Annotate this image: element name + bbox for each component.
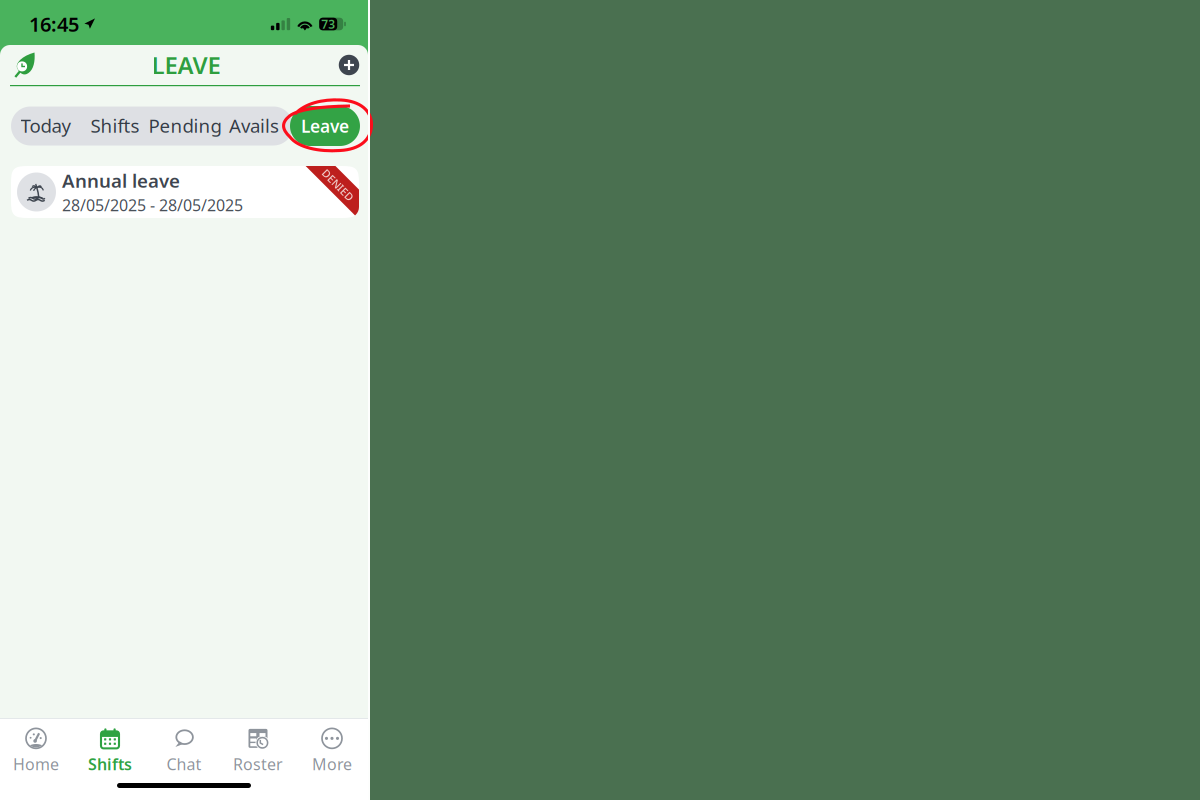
button[interactable]: Leave xyxy=(290,106,360,146)
button[interactable]: Home xyxy=(0,727,73,775)
staticText: Home xyxy=(13,753,59,775)
staticText: Shifts xyxy=(88,753,132,775)
button[interactable]: Annual leave xyxy=(11,166,359,218)
staticText: 28/05/2025 - 28/05/2025 xyxy=(62,194,243,216)
staticText: 16:45 xyxy=(29,11,79,37)
staticText: Pending xyxy=(148,113,221,138)
staticText: More xyxy=(312,753,352,775)
button[interactable]: Shifts xyxy=(73,727,147,775)
staticText: Roster xyxy=(233,753,283,775)
button[interactable]: Avails xyxy=(227,106,281,145)
button[interactable]: Roster xyxy=(221,727,295,775)
staticText: Leave xyxy=(301,114,349,137)
button[interactable]: Leave Planner logo xyxy=(7,48,43,82)
button[interactable]: Shifts xyxy=(88,106,142,145)
button[interactable]: Add leave request xyxy=(331,48,367,82)
staticText: LEAVE xyxy=(151,49,220,81)
staticText: DENIED xyxy=(318,178,358,192)
staticText: Shifts xyxy=(90,113,139,138)
button[interactable]: Pending xyxy=(150,106,220,145)
button[interactable]: Chat xyxy=(147,727,221,775)
staticText: Today xyxy=(20,113,71,138)
button[interactable]: More xyxy=(295,727,369,775)
staticText: 73 xyxy=(321,16,335,32)
staticText: Annual leave xyxy=(62,168,180,193)
button[interactable]: Today xyxy=(17,106,75,145)
staticText: Chat xyxy=(166,753,201,775)
staticText: Avails xyxy=(229,113,279,138)
